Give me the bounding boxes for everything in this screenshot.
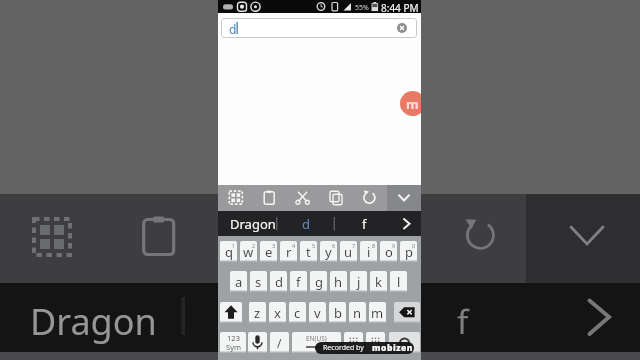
staticText: d xyxy=(275,273,283,291)
staticText: 2 xyxy=(252,242,256,249)
staticText: m xyxy=(406,95,419,113)
staticText: f xyxy=(457,299,469,344)
button[interactable]: u xyxy=(340,241,357,262)
staticText: t xyxy=(306,243,311,261)
staticText: x xyxy=(274,304,281,322)
button[interactable]: d xyxy=(270,271,287,292)
staticText: Recorded by xyxy=(323,343,366,353)
staticText: 7 xyxy=(352,242,356,249)
staticText: 4 xyxy=(292,242,296,249)
button[interactable]: w xyxy=(240,241,257,262)
button[interactable] xyxy=(389,332,420,353)
button[interactable]: j xyxy=(350,271,367,292)
button[interactable] xyxy=(220,302,242,323)
button[interactable]: s xyxy=(250,271,267,292)
staticText: d xyxy=(229,21,237,37)
staticText: s xyxy=(255,273,262,291)
staticText: 8:44 PM xyxy=(381,1,419,14)
button[interactable]: h xyxy=(330,271,347,292)
staticText: g xyxy=(315,273,323,291)
button[interactable]: q xyxy=(220,241,237,262)
staticText: 8 xyxy=(372,242,376,249)
button[interactable] xyxy=(397,23,407,33)
staticText: i xyxy=(367,243,371,261)
staticText: EN(US) xyxy=(306,334,327,343)
button[interactable]: x xyxy=(269,302,286,323)
staticText: / xyxy=(277,335,282,351)
staticText: r xyxy=(286,243,292,261)
staticText: m xyxy=(371,304,384,322)
button[interactable] xyxy=(287,185,319,211)
button[interactable]: o xyxy=(380,241,397,262)
button[interactable]: f xyxy=(290,271,307,292)
button[interactable] xyxy=(387,185,421,211)
staticText: p xyxy=(405,243,413,261)
staticText: y xyxy=(325,243,332,261)
button[interactable]: / xyxy=(270,332,289,353)
staticText: mobizen xyxy=(372,342,413,354)
button[interactable] xyxy=(344,332,363,353)
staticText: 6 xyxy=(332,242,336,249)
button[interactable]: d xyxy=(278,211,333,237)
button[interactable]: Dragon xyxy=(218,211,276,237)
staticText: o xyxy=(385,243,393,261)
button[interactable]: v xyxy=(309,302,326,323)
button[interactable] xyxy=(394,302,420,323)
button[interactable]: n xyxy=(349,302,366,323)
button[interactable]: b xyxy=(329,302,346,323)
button[interactable]: r xyxy=(280,241,297,262)
button[interactable]: f xyxy=(335,211,393,237)
button[interactable] xyxy=(220,185,252,211)
button[interactable]: l xyxy=(390,271,407,292)
button[interactable] xyxy=(388,185,420,211)
staticText: u xyxy=(344,243,353,261)
staticText: k xyxy=(375,273,382,291)
staticText: q xyxy=(225,243,233,261)
staticText: 55% xyxy=(355,3,369,13)
button[interactable] xyxy=(395,211,421,237)
staticText: z xyxy=(254,304,261,322)
staticText: f xyxy=(296,273,301,291)
staticText: j xyxy=(357,273,361,291)
button[interactable]: z xyxy=(249,302,266,323)
staticText: Dragon xyxy=(230,215,276,233)
button[interactable] xyxy=(353,185,385,211)
button[interactable] xyxy=(253,185,285,211)
button[interactable]: i xyxy=(360,241,377,262)
button[interactable]: e xyxy=(260,241,277,262)
staticText: 0 xyxy=(412,242,416,249)
button[interactable]: d xyxy=(221,18,417,38)
staticText: v xyxy=(314,304,321,322)
button[interactable]: m xyxy=(369,302,386,323)
button[interactable] xyxy=(366,332,385,353)
button[interactable]: t xyxy=(300,241,317,262)
button[interactable]: p xyxy=(400,241,417,262)
staticText: Dragon xyxy=(30,297,157,346)
staticText: 9 xyxy=(392,242,396,249)
button[interactable]: a xyxy=(230,271,247,292)
staticText: 5 xyxy=(312,242,316,249)
staticText: c xyxy=(294,304,301,322)
staticText: e xyxy=(265,243,273,261)
staticText: d xyxy=(302,215,310,233)
button[interactable]: k xyxy=(370,271,387,292)
staticText: w xyxy=(243,243,254,261)
staticText: a xyxy=(235,273,243,291)
button[interactable]: y xyxy=(320,241,337,262)
button[interactable] xyxy=(320,185,352,211)
button[interactable] xyxy=(248,332,267,353)
button[interactable]: Recorded by xyxy=(315,342,414,354)
staticText: n xyxy=(353,304,362,322)
staticText: h xyxy=(334,273,343,291)
button[interactable]: EN(US) xyxy=(292,332,341,353)
staticText: 1 xyxy=(232,242,236,249)
button[interactable]: m xyxy=(400,91,421,116)
staticText: 3 xyxy=(272,242,276,249)
staticText: 123 Sym xyxy=(226,333,241,352)
button[interactable]: c xyxy=(289,302,306,323)
staticText: b xyxy=(334,304,342,322)
staticText: f xyxy=(362,215,367,233)
button[interactable]: 123 Sym xyxy=(220,332,246,353)
staticText: l xyxy=(397,273,401,291)
button[interactable]: g xyxy=(310,271,327,292)
